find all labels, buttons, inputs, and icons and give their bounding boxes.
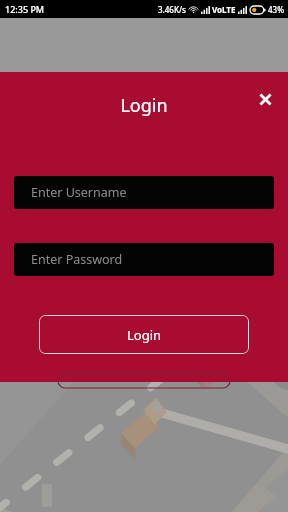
staticText: Enter Username xyxy=(31,184,127,201)
button[interactable]: Login xyxy=(39,315,249,354)
button[interactable]: Enter Username xyxy=(14,176,274,209)
staticText: Login xyxy=(127,326,162,344)
staticText: 43% xyxy=(268,4,284,15)
button[interactable]: Enter Password xyxy=(14,243,274,276)
button[interactable]: Close xyxy=(252,86,278,112)
staticText: Login xyxy=(120,93,168,118)
staticText: 12:35 PM xyxy=(5,3,45,15)
staticText: Enter Password xyxy=(31,251,123,268)
staticText: VoLTE xyxy=(212,4,236,15)
staticText: 3.46K/s xyxy=(158,4,186,15)
